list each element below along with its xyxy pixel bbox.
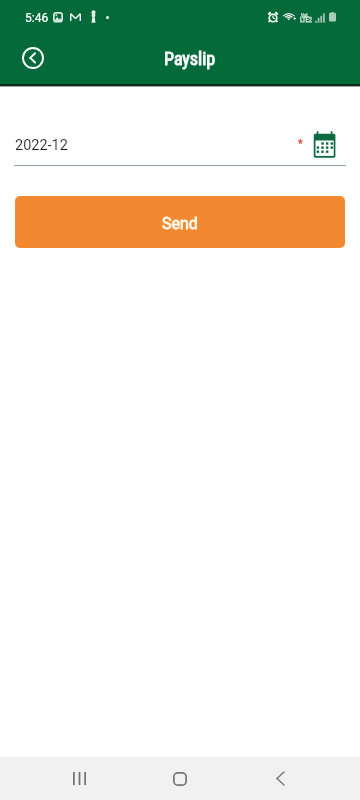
- button[interactable]: Home: [156, 757, 204, 800]
- button[interactable]: Recent apps: [55, 757, 103, 800]
- staticText: Payslip: [164, 48, 216, 69]
- staticText: Send: [162, 214, 198, 233]
- button[interactable]: Send: [15, 196, 345, 248]
- staticText: 5:46: [25, 11, 49, 25]
- button[interactable]: Back: [14, 39, 51, 76]
- button[interactable]: [14, 124, 346, 166]
- staticText: VoL: [301, 12, 309, 18]
- staticText: LTE2: [300, 16, 313, 24]
- staticText: 2022-12: [15, 137, 68, 154]
- button[interactable]: Select month: [306, 124, 342, 160]
- staticText: *: [298, 137, 303, 150]
- button[interactable]: Back: [256, 757, 304, 800]
